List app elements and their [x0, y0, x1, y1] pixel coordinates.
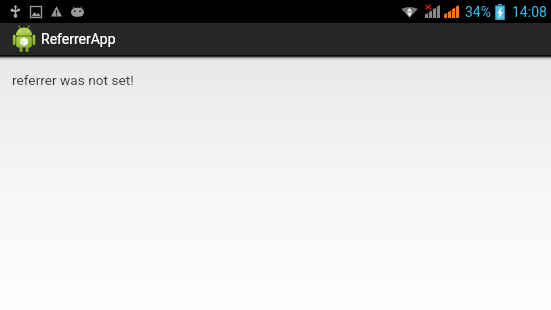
- button[interactable]: ReferrerApp, home: [0, 23, 126, 55]
- staticText: 34%: [465, 4, 491, 20]
- staticText: 14:08: [512, 4, 547, 20]
- staticText: referrer was not set!: [12, 72, 134, 88]
- other: Status bar: [0, 0, 551, 23]
- staticText: ReferrerApp: [41, 31, 116, 47]
